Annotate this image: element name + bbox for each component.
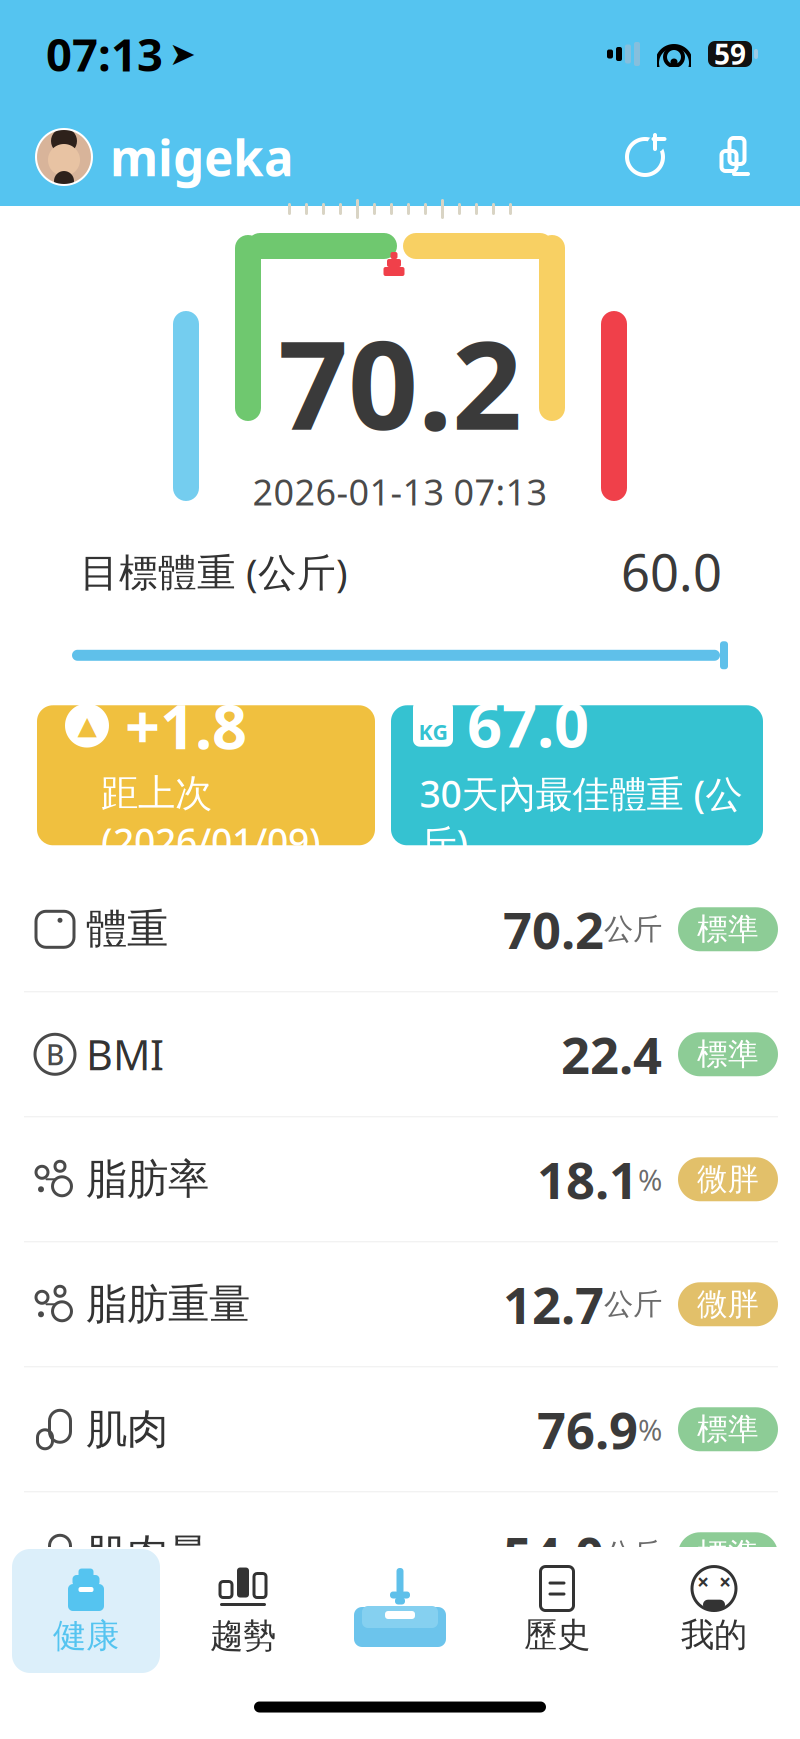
staticText: 微胖 (697, 1160, 759, 1198)
staticText: 76.9 (537, 1396, 638, 1463)
staticText: 標準 (697, 1035, 759, 1073)
staticText: 70.2 (278, 301, 522, 463)
staticText: 健康 (53, 1615, 119, 1656)
button[interactable]: × (640, 1549, 788, 1673)
button[interactable]: 歷史 (483, 1549, 631, 1673)
staticText: 體重 (86, 904, 168, 955)
button[interactable]: ▲ (37, 705, 375, 845)
staticText: 22.4 (561, 1021, 662, 1088)
button[interactable]: 脂肪重量 (0, 1242, 800, 1367)
staticText: 脂肪重量 (86, 1279, 250, 1330)
button[interactable]: 健康 (12, 1549, 160, 1673)
staticText: 標準 (697, 1535, 759, 1573)
button[interactable]: B (0, 992, 800, 1117)
button[interactable]: Measure (326, 1549, 474, 1673)
staticText: B (46, 1036, 64, 1073)
button[interactable]: 體重 (0, 867, 800, 992)
button[interactable]: 脂肪率 (0, 1117, 800, 1242)
staticText: 54.0 (503, 1521, 604, 1588)
staticText: migeka (110, 124, 294, 190)
staticText: × (697, 1567, 709, 1596)
staticText: ▲ (77, 711, 96, 740)
staticText: 公斤 (604, 1286, 662, 1322)
staticText: × (719, 1567, 731, 1596)
staticText: 07:13 (46, 24, 163, 84)
button[interactable]: Edit (710, 134, 756, 180)
staticText: 30天內最佳體重 (公斤) (419, 768, 742, 868)
staticText: 標準 (697, 910, 759, 948)
staticText: 59 (714, 35, 746, 73)
button[interactable]: 肌肉 (0, 1367, 800, 1492)
button[interactable]: KG (391, 705, 763, 845)
staticText: 肌肉 (86, 1404, 168, 1455)
staticText: % (638, 1410, 662, 1449)
button[interactable]: Sync (622, 134, 668, 180)
staticText: 目標體重 (公斤) (80, 546, 348, 597)
staticText: 60.0 (621, 538, 722, 605)
staticText: 肌肉量 (86, 1529, 209, 1580)
staticText: 距上次(2026/01/09) (101, 770, 321, 866)
staticText: KG (418, 717, 447, 746)
staticText: 公斤 (604, 911, 662, 947)
button[interactable]: 目標體重 (公斤) (0, 508, 800, 669)
staticText: 趨勢 (210, 1615, 276, 1656)
button[interactable]: migeka (36, 124, 294, 190)
staticText: 我的 (681, 1614, 747, 1655)
button[interactable]: 肌肉量 (0, 1492, 800, 1616)
staticText: 2026-01-13 07:13 (252, 467, 547, 515)
staticText: 70.2 (503, 896, 604, 963)
staticText: 脂肪率 (86, 1154, 209, 1205)
staticText: % (638, 1160, 662, 1199)
staticText: +1.8 (125, 685, 247, 766)
staticText: BMI (86, 1027, 164, 1082)
button[interactable]: 趨勢 (169, 1549, 317, 1673)
staticText: 標準 (697, 1410, 759, 1448)
staticText: 微胖 (697, 1285, 759, 1323)
staticText: 67.0 (467, 683, 589, 764)
staticText: 18.1 (537, 1146, 638, 1213)
staticText: 歷史 (524, 1614, 590, 1655)
staticText: 公斤 (604, 1536, 662, 1572)
staticText: ➤ (169, 36, 196, 72)
staticText: 12.7 (503, 1271, 604, 1338)
